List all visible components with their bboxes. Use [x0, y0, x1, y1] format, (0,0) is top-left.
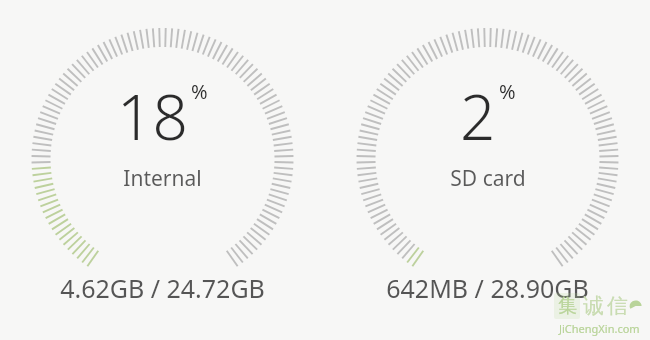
staticText: Internal [123, 164, 202, 193]
button[interactable]: Internal storage 18 percent used [0, 0, 325, 340]
staticText: 信 [607, 293, 628, 319]
staticText: 2 [460, 74, 496, 158]
button[interactable]: SD card 2 percent used [325, 0, 650, 340]
staticText: JiChengXin.com [559, 321, 640, 336]
staticText: SD card [450, 164, 526, 193]
staticText: % [499, 78, 516, 105]
staticText: 4.62GB / 24.72GB [60, 271, 265, 305]
staticText: 642MB / 28.90GB [386, 271, 589, 305]
staticText: 诚 [583, 293, 604, 319]
staticText: 集 [558, 294, 577, 318]
staticText: % [191, 78, 208, 105]
staticText: 18 [117, 74, 188, 158]
